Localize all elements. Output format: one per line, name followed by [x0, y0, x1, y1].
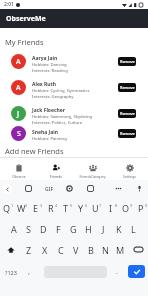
staticText: T	[63, 202, 69, 214]
button[interactable]: Voice input	[135, 184, 144, 193]
button[interactable]: Z	[21, 239, 37, 260]
button[interactable]: X	[37, 239, 53, 260]
button[interactable]: More	[114, 184, 123, 193]
staticText: Add new Friends	[5, 146, 64, 156]
button[interactable]: S	[21, 218, 36, 239]
button[interactable]: Backspace	[128, 239, 148, 260]
button[interactable]: Remove	[118, 109, 136, 118]
staticText: I	[109, 202, 113, 214]
staticText: G	[70, 223, 77, 235]
button[interactable]: Observe	[0, 158, 37, 180]
staticText: B	[88, 244, 94, 256]
button[interactable]: Translate	[86, 184, 95, 193]
button[interactable]: A	[0, 48, 148, 74]
button[interactable]: W	[14, 197, 28, 218]
staticText: N	[102, 244, 109, 256]
staticText: F	[56, 223, 61, 235]
button[interactable]: P	[133, 197, 148, 218]
button[interactable]: T	[58, 197, 73, 218]
button[interactable]: G	[66, 218, 81, 239]
staticText: Q	[3, 202, 11, 214]
button[interactable]: H	[81, 218, 96, 239]
staticText: 0	[145, 203, 148, 208]
button[interactable]: K	[111, 218, 126, 239]
button[interactable]: ?123	[0, 264, 22, 280]
button[interactable]: Shift	[0, 239, 21, 260]
staticText: 2	[25, 203, 28, 208]
button[interactable]: Y	[73, 197, 88, 218]
staticText: Hobbies: Dancing	[32, 62, 67, 68]
staticText: Remove	[120, 131, 135, 136]
button[interactable]: C	[53, 239, 68, 260]
staticText: Y	[78, 202, 84, 214]
button[interactable]: R	[43, 197, 58, 218]
button[interactable]: D	[36, 218, 51, 239]
button[interactable]: L	[126, 218, 141, 239]
staticText: My Friends	[5, 37, 44, 47]
button[interactable]: S	[0, 126, 148, 141]
staticText: K	[116, 223, 122, 235]
button[interactable]: GIF	[43, 184, 55, 194]
button[interactable]: E	[28, 197, 43, 218]
staticText: Z	[26, 244, 32, 256]
button[interactable]: B	[83, 239, 98, 260]
staticText: 7	[99, 203, 102, 208]
staticText: Remove	[120, 85, 135, 90]
button[interactable]: Stickers	[24, 184, 33, 193]
staticText: 6	[85, 203, 88, 208]
staticText: 3	[40, 203, 43, 208]
staticText: Hobbies: Painting	[32, 136, 67, 141]
button[interactable]: ObserveMe	[0, 9, 148, 28]
staticText: Interests: Reading	[32, 68, 68, 74]
button[interactable]: Settings	[111, 158, 148, 180]
staticText: S	[26, 223, 31, 235]
button[interactable]: Q	[0, 197, 14, 218]
button[interactable]: FriendsCategory	[74, 158, 111, 180]
staticText: GIF	[45, 186, 54, 193]
staticText: U	[92, 202, 99, 214]
staticText: Remove	[120, 111, 135, 116]
staticText: Interests: Geography	[32, 94, 74, 100]
button[interactable]: U	[88, 197, 103, 218]
staticText: FriendsCategory	[79, 174, 106, 179]
button[interactable]: J	[0, 100, 148, 126]
button[interactable]: J	[96, 218, 111, 239]
staticText: L	[131, 223, 136, 235]
staticText: ,	[28, 267, 30, 277]
staticText: Settings	[123, 174, 136, 179]
button[interactable]: M	[113, 239, 128, 260]
staticText: Remove	[120, 59, 135, 64]
staticText: 9	[130, 203, 133, 208]
button[interactable]: V	[68, 239, 83, 260]
staticText: Alex Ruth	[32, 81, 56, 88]
staticText: Observe	[12, 174, 26, 179]
staticText: A	[11, 223, 17, 235]
staticText: Interests: Politics, Culture	[32, 120, 83, 126]
staticText: E	[33, 202, 39, 214]
button[interactable]: I	[103, 197, 118, 218]
staticText: 1	[11, 203, 14, 208]
staticText: O	[122, 202, 130, 214]
staticText: ?123	[5, 269, 17, 276]
button[interactable]: Remove	[118, 129, 136, 138]
button[interactable]: A	[7, 218, 21, 239]
button[interactable]: Remove	[118, 57, 136, 66]
button[interactable]: N	[98, 239, 113, 260]
button[interactable]: Remove	[118, 83, 136, 92]
button[interactable]: Settings	[65, 184, 74, 193]
button[interactable]: Enter	[128, 265, 145, 278]
button[interactable]: F	[51, 218, 66, 239]
button[interactable]: Back	[2, 184, 12, 194]
staticText: ObserveMe	[6, 14, 46, 24]
staticText: Sneha Jain	[32, 129, 58, 136]
button[interactable]: .	[110, 264, 124, 280]
button[interactable]: A	[0, 74, 148, 100]
staticText: Aarya Jain	[32, 55, 58, 62]
button[interactable]: Friends	[37, 158, 74, 180]
button[interactable]: O	[118, 197, 133, 218]
button[interactable]: ,	[22, 264, 36, 280]
staticText: J	[17, 109, 20, 119]
staticText: H	[85, 223, 92, 235]
staticText: Jack Floecher	[32, 107, 66, 114]
